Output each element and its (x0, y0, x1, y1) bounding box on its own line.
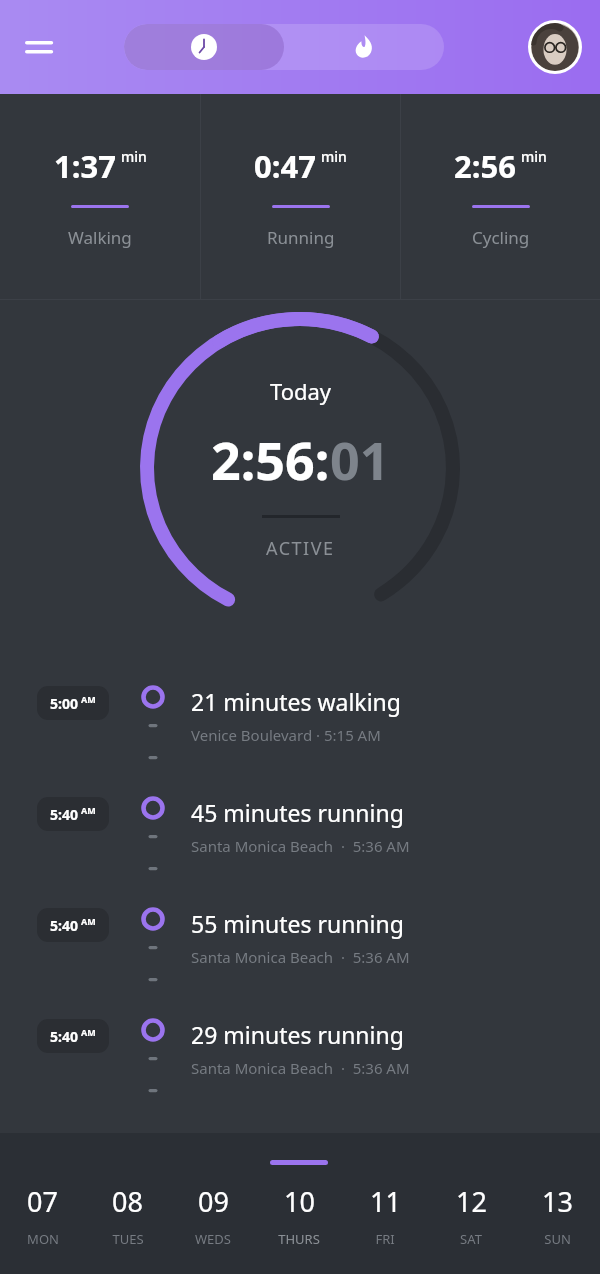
staticText: AM (81, 693, 96, 705)
button[interactable]: 10 (256, 1133, 342, 1274)
staticText: Santa Monica Beach · 5:36 AM (191, 947, 410, 967)
staticText: 55 minutes running (191, 908, 404, 939)
staticText: Walking (68, 226, 132, 249)
staticText: MON (27, 1230, 59, 1248)
button[interactable]: 5:40 (0, 898, 600, 1009)
staticText: 11 (370, 1183, 401, 1220)
staticText: 5:40 (50, 1027, 78, 1046)
button[interactable]: Calories (284, 24, 444, 70)
button[interactable]: 1:37 (0, 94, 200, 300)
staticText: 45 minutes running (191, 797, 404, 828)
button[interactable]: 13 (514, 1133, 600, 1274)
button[interactable]: 5:40 (0, 1009, 600, 1120)
staticText: 08 (112, 1183, 143, 1220)
button[interactable]: 08 (85, 1133, 170, 1274)
staticText: 5:00 (50, 694, 78, 713)
staticText: min (521, 147, 547, 166)
button[interactable]: 2:56 (401, 94, 600, 300)
staticText: 10 (284, 1183, 315, 1220)
staticText: AM (81, 915, 96, 927)
staticText: THURS (278, 1230, 320, 1248)
staticText: min (321, 147, 347, 166)
staticText: Cycling (472, 226, 530, 249)
staticText: SUN (544, 1230, 571, 1248)
staticText: 5:40 (50, 805, 78, 824)
staticText: 2:56 (454, 145, 516, 187)
staticText: FRI (375, 1230, 395, 1248)
staticText: Venice Boulevard · 5:15 AM (191, 725, 381, 745)
button[interactable]: 12 (428, 1133, 514, 1274)
staticText: WEDS (195, 1230, 231, 1248)
staticText: 2:56: (211, 424, 330, 495)
staticText: AM (81, 804, 96, 816)
button[interactable]: Time (124, 24, 284, 70)
staticText: Santa Monica Beach · 5:36 AM (191, 836, 410, 856)
staticText: 0:47 (254, 145, 316, 187)
staticText: 12 (456, 1183, 487, 1220)
button[interactable]: 5:00 (0, 676, 600, 787)
staticText: Today (270, 376, 332, 406)
staticText: 13 (542, 1183, 573, 1220)
button[interactable]: 09 (170, 1133, 256, 1274)
staticText: 5:40 (50, 916, 78, 935)
button[interactable]: 07 (0, 1133, 85, 1274)
staticText: Running (267, 226, 335, 249)
staticText: TUES (112, 1230, 144, 1248)
staticText: ACTIVE (266, 536, 335, 561)
button[interactable]: 11 (342, 1133, 428, 1274)
button[interactable]: 5:40 (0, 787, 600, 898)
staticText: 29 minutes running (191, 1019, 404, 1050)
button[interactable]: Profile (528, 20, 582, 74)
staticText: 09 (198, 1183, 229, 1220)
staticText: AM (81, 1026, 96, 1038)
button[interactable]: 0:47 (201, 94, 400, 300)
staticText: min (121, 147, 147, 166)
staticText: Santa Monica Beach · 5:36 AM (191, 1058, 410, 1078)
staticText: 1:37 (54, 145, 116, 187)
staticText: 21 minutes walking (191, 686, 401, 717)
staticText: SAT (460, 1230, 482, 1248)
button[interactable]: Menu (18, 25, 62, 69)
staticText: 01 (330, 424, 390, 495)
staticText: 07 (27, 1183, 58, 1220)
